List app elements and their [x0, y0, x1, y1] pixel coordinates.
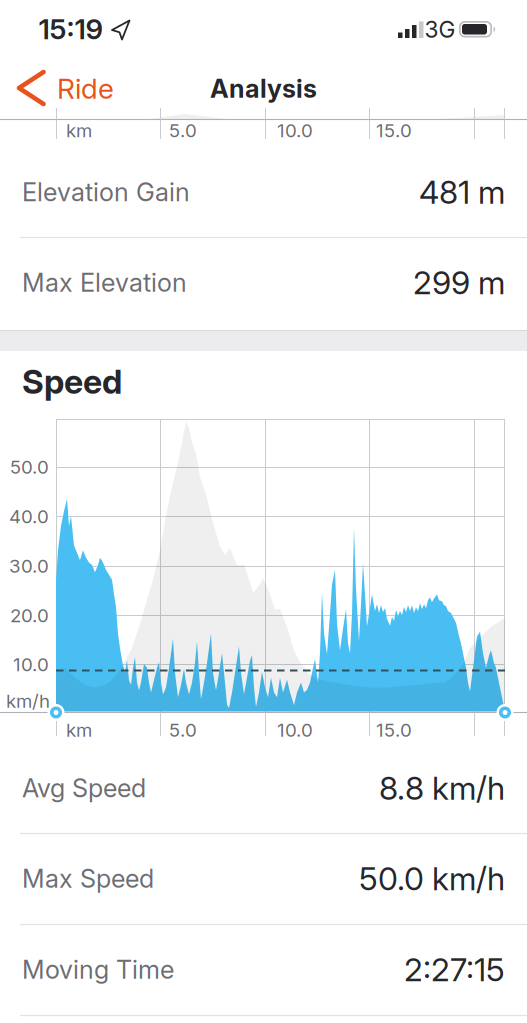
staticText: Speed	[22, 362, 122, 401]
staticText: Max Speed	[22, 864, 154, 893]
staticText: 15.0	[376, 719, 412, 741]
staticText: 20.0	[10, 604, 49, 626]
staticText: 15:19	[38, 12, 103, 45]
staticText: 10.0	[277, 119, 313, 141]
staticText: Analysis	[210, 74, 317, 103]
staticText: 299 m	[413, 264, 505, 301]
staticText: 10.0	[277, 719, 313, 741]
staticText: 481 m	[419, 173, 505, 211]
staticText: 30.0	[9, 555, 49, 577]
staticText: 5.0	[169, 119, 197, 141]
staticText: Avg Speed	[22, 773, 146, 803]
staticText: 8.8 km/h	[379, 769, 505, 807]
staticText: km	[66, 719, 92, 741]
staticText: 40.0	[9, 505, 49, 527]
staticText: 5.0	[169, 719, 197, 741]
staticText: Max Elevation	[22, 268, 187, 297]
staticText: 15.0	[376, 119, 412, 141]
staticText: km/h	[6, 690, 50, 712]
staticText: Elevation Gain	[22, 177, 190, 207]
staticText: Moving Time	[22, 955, 174, 984]
staticText: 50.0 km/h	[359, 860, 505, 897]
staticText: 2:27:15	[404, 951, 505, 988]
staticText: km	[66, 119, 92, 141]
staticText: 50.0	[10, 456, 49, 478]
staticText: 10.0	[13, 653, 49, 675]
staticText: Ride	[57, 72, 114, 105]
staticText: 3G	[424, 16, 455, 43]
